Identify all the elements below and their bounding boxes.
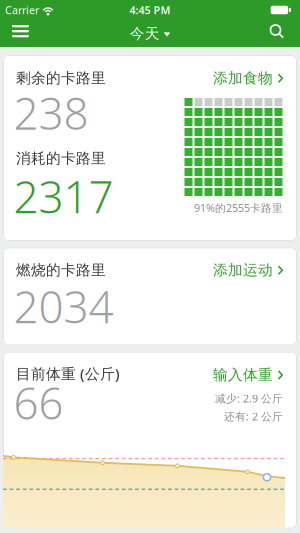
staticText: 燃烧的卡路里	[16, 261, 106, 279]
staticText: 91%的2555卡路里	[194, 201, 283, 215]
staticText: 66	[13, 373, 63, 431]
staticText: 剩余的卡路里	[16, 69, 106, 87]
staticText: 4:45 PM	[129, 3, 170, 17]
staticText: 今天	[130, 24, 160, 42]
staticText: 2317	[13, 167, 113, 225]
staticText: 添加运动	[213, 261, 273, 279]
staticText: 目前体重 (公斤)	[16, 364, 120, 383]
staticText: Carrier	[5, 3, 39, 17]
staticText: 还有: 2 公斤	[224, 409, 283, 423]
staticText: 238	[13, 83, 88, 142]
staticText: 2034	[13, 277, 113, 335]
staticText: 减少: 2.9 公斤	[215, 391, 283, 405]
staticText: 输入体重	[213, 366, 273, 384]
staticText: 消耗的卡路里	[16, 149, 106, 167]
staticText: 添加食物	[213, 69, 273, 87]
